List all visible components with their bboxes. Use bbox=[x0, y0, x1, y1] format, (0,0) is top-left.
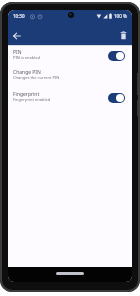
button[interactable]: PIN bbox=[8, 48, 132, 69]
button[interactable] bbox=[56, 272, 84, 275]
staticText: Fingerprint enabled bbox=[13, 97, 51, 102]
button[interactable] bbox=[108, 51, 125, 61]
staticText: 100 % bbox=[114, 13, 127, 19]
button[interactable]: Change PIN bbox=[8, 68, 132, 89]
staticText: 10:30 bbox=[13, 13, 25, 19]
button[interactable] bbox=[108, 93, 125, 103]
staticText: Changes the current PIN bbox=[13, 75, 60, 80]
staticText: Change PIN bbox=[13, 69, 41, 76]
button[interactable]: Fingerprint bbox=[8, 90, 132, 111]
button[interactable] bbox=[11, 30, 23, 42]
button[interactable] bbox=[117, 29, 129, 41]
staticText: Fingerprint bbox=[13, 91, 40, 98]
staticText: PIN bbox=[13, 49, 22, 56]
staticText: PIN is enabled bbox=[13, 55, 41, 60]
